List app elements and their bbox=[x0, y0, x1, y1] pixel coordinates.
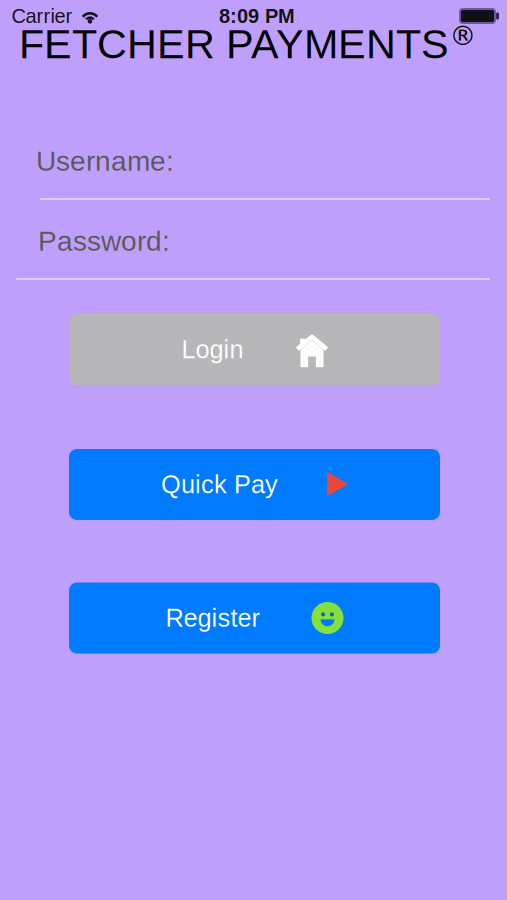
button[interactable]: Quick Pay bbox=[69, 449, 440, 520]
staticText: Carrier bbox=[11, 5, 72, 27]
button[interactable]: Username: bbox=[40, 140, 490, 202]
button[interactable]: Login bbox=[69, 314, 440, 385]
button[interactable]: Register bbox=[69, 582, 440, 653]
staticText: Quick Pay bbox=[161, 470, 278, 499]
staticText: 8:09 PM bbox=[219, 5, 295, 27]
staticText: Username: bbox=[36, 145, 174, 177]
button[interactable]: Password: bbox=[16, 220, 490, 282]
staticText: Login bbox=[181, 335, 243, 364]
staticText: FETCHER PAYMENTS bbox=[19, 21, 449, 67]
staticText: ® bbox=[449, 20, 476, 51]
staticText: Password: bbox=[38, 225, 170, 257]
staticText: Register bbox=[165, 604, 259, 632]
